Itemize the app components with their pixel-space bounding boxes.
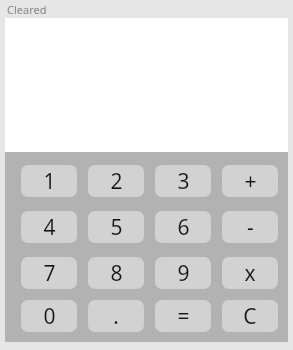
button[interactable]: . bbox=[88, 300, 144, 332]
button[interactable]: 8 bbox=[88, 257, 144, 289]
button[interactable]: C bbox=[222, 300, 278, 332]
staticText: 8 bbox=[110, 259, 123, 288]
button[interactable]: 7 bbox=[21, 257, 77, 289]
button[interactable]: - bbox=[222, 211, 278, 243]
button[interactable]: + bbox=[222, 165, 278, 197]
button[interactable]: 9 bbox=[155, 257, 211, 289]
button[interactable]: 3 bbox=[155, 165, 211, 197]
staticText: 4 bbox=[43, 213, 56, 242]
staticText: 1 bbox=[43, 167, 56, 196]
button[interactable]: 5 bbox=[88, 211, 144, 243]
staticText: 6 bbox=[177, 213, 190, 242]
staticText: 3 bbox=[177, 167, 190, 196]
button[interactable]: 4 bbox=[21, 211, 77, 243]
staticText: Cleared bbox=[7, 2, 47, 17]
button[interactable]: 6 bbox=[155, 211, 211, 243]
staticText: 9 bbox=[177, 259, 190, 288]
button[interactable]: 2 bbox=[88, 165, 144, 197]
staticText: x bbox=[244, 259, 256, 288]
staticText: 0 bbox=[43, 302, 56, 331]
staticText: . bbox=[113, 302, 119, 331]
staticText: 2 bbox=[110, 167, 123, 196]
button[interactable]: x bbox=[222, 257, 278, 289]
staticText: 5 bbox=[110, 213, 123, 242]
staticText: + bbox=[244, 167, 257, 196]
staticText: = bbox=[177, 302, 190, 331]
button[interactable]: 0 bbox=[21, 300, 77, 332]
staticText: C bbox=[243, 302, 257, 331]
staticText: 7 bbox=[43, 259, 56, 288]
button[interactable]: 1 bbox=[21, 165, 77, 197]
staticText: - bbox=[247, 213, 254, 242]
button[interactable]: = bbox=[155, 300, 211, 332]
